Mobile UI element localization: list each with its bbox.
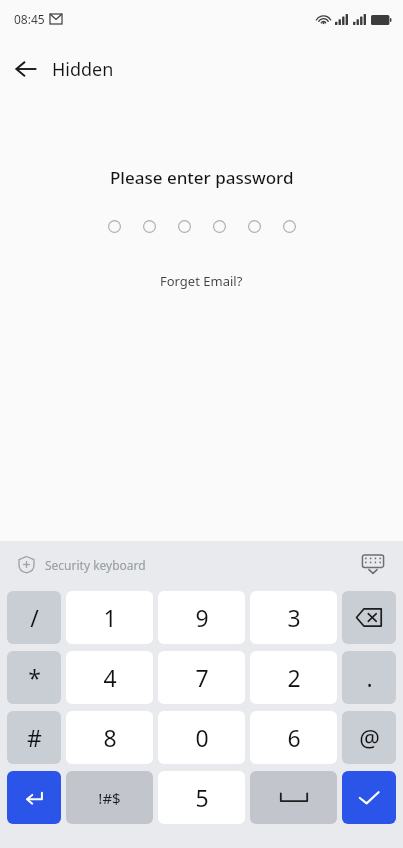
button[interactable]: 4: [66, 651, 153, 704]
staticText: 7: [195, 662, 209, 693]
staticText: Security keyboard: [45, 557, 146, 573]
staticText: /: [30, 602, 39, 633]
button[interactable]: 8: [66, 711, 153, 764]
staticText: 5: [195, 782, 209, 813]
staticText: 3: [287, 602, 301, 633]
staticText: @: [359, 722, 380, 753]
staticText: 0: [195, 722, 209, 753]
button[interactable]: 0: [158, 711, 245, 764]
button[interactable]: Space: [250, 771, 337, 824]
staticText: #: [27, 722, 42, 753]
button[interactable]: #: [7, 711, 61, 764]
staticText: 6: [287, 722, 301, 753]
staticText: Please enter password: [110, 166, 294, 189]
button[interactable]: 6: [250, 711, 337, 764]
button[interactable]: Enter: [7, 771, 61, 824]
staticText: 4: [103, 662, 117, 693]
staticText: !#$: [98, 788, 121, 808]
button[interactable]: !#$: [66, 771, 153, 824]
button[interactable]: Backspace: [342, 591, 396, 644]
button[interactable]: 2: [250, 651, 337, 704]
staticText: 2: [287, 662, 301, 693]
staticText: .: [366, 662, 373, 693]
button[interactable]: 5: [158, 771, 245, 824]
button[interactable]: Forget Email?: [150, 268, 253, 294]
staticText: Forget Email?: [160, 272, 243, 290]
staticText: 1: [103, 602, 117, 633]
button[interactable]: Confirm: [342, 771, 396, 824]
button[interactable]: 3: [250, 591, 337, 644]
button[interactable]: .: [342, 651, 396, 704]
button[interactable]: @: [342, 711, 396, 764]
staticText: Hidden: [52, 57, 114, 82]
button[interactable]: 1: [66, 591, 153, 644]
button[interactable]: 9: [158, 591, 245, 644]
staticText: 08:45: [14, 11, 45, 27]
button[interactable]: 7: [158, 651, 245, 704]
staticText: 9: [195, 602, 209, 633]
staticText: 8: [103, 722, 117, 753]
button[interactable]: Back: [0, 43, 52, 95]
button[interactable]: /: [7, 591, 61, 644]
button[interactable]: Hide keyboard: [355, 546, 391, 582]
button[interactable]: *: [7, 651, 61, 704]
staticText: *: [28, 662, 41, 693]
